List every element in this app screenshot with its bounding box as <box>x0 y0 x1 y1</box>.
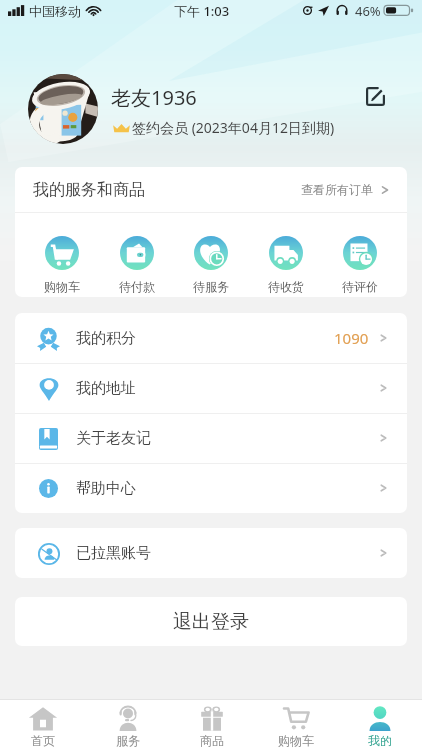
button[interactable]: 购物车 <box>31 213 93 297</box>
staticText: 待收货 <box>268 279 304 294</box>
button[interactable]: 我的地址 <box>15 363 407 413</box>
button[interactable]: 商品 <box>170 700 254 750</box>
button[interactable]: 退出登录 <box>15 597 407 646</box>
staticText: 待服务 <box>193 279 229 294</box>
button[interactable]: 我的积分 <box>15 313 407 363</box>
button[interactable] <box>28 74 98 144</box>
button[interactable]: 待评价 <box>329 213 391 297</box>
button[interactable]: 首页 <box>0 700 85 750</box>
button[interactable]: 我的服务和商品 <box>33 167 390 212</box>
staticText: 下午 1:03 <box>174 2 230 20</box>
button[interactable]: 我的 <box>338 700 422 750</box>
staticText: 服务 <box>116 733 140 748</box>
staticText: 查看所有订单 <box>301 182 373 197</box>
staticText: 签约会员 (2023年04月12日到期) <box>132 118 335 137</box>
staticText: 我的地址 <box>76 379 136 398</box>
staticText: 1090 <box>334 328 369 348</box>
button[interactable]: 关于老友记 <box>15 413 407 463</box>
button[interactable]: 待服务 <box>180 213 242 297</box>
staticText: 我的积分 <box>76 329 136 348</box>
staticText: 我的服务和商品 <box>33 180 145 200</box>
staticText: 老友1936 <box>111 84 197 111</box>
staticText: 退出登录 <box>173 610 249 634</box>
staticText: 46% <box>355 2 381 20</box>
button[interactable]: Edit profile <box>360 81 391 112</box>
staticText: 购物车 <box>278 733 314 748</box>
staticText: 已拉黑账号 <box>76 544 151 563</box>
staticText: 商品 <box>200 733 224 748</box>
staticText: 关于老友记 <box>76 429 151 448</box>
button[interactable]: 已拉黑账号 <box>15 528 407 578</box>
staticText: 待评价 <box>342 279 378 294</box>
staticText: 购物车 <box>44 279 80 294</box>
staticText: 我的 <box>368 733 392 748</box>
staticText: 帮助中心 <box>76 479 136 498</box>
staticText: 中国移动 <box>29 3 81 19</box>
button[interactable]: 待付款 <box>106 213 168 297</box>
button[interactable]: 待收货 <box>255 213 317 297</box>
staticText: 待付款 <box>119 279 155 294</box>
button[interactable]: 服务 <box>85 700 170 750</box>
button[interactable]: 购物车 <box>254 700 338 750</box>
button[interactable]: 帮助中心 <box>15 463 407 513</box>
staticText: 首页 <box>31 733 55 748</box>
